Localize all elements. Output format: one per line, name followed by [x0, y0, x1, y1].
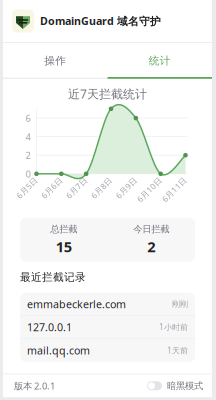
- staticText: 2: [25, 149, 30, 161]
- staticText: 1小时前: [159, 322, 188, 332]
- button[interactable]: 127.0.0.1: [20, 316, 195, 339]
- staticText: 6月9日: [115, 187, 141, 198]
- staticText: 6月8日: [90, 187, 116, 198]
- staticText: 最近拦截记录: [20, 271, 86, 284]
- staticText: 版本 2.0.1: [14, 380, 55, 392]
- staticText: 总拦截: [50, 223, 77, 235]
- staticText: 6: [25, 112, 30, 124]
- staticText: mail.qq.com: [27, 343, 90, 357]
- staticText: 操作: [44, 54, 66, 67]
- staticText: 刚刚: [172, 299, 188, 309]
- staticText: 6月6日: [41, 187, 67, 198]
- staticText: 6月5日: [16, 187, 42, 198]
- staticText: 15: [56, 237, 72, 256]
- button[interactable]: 统计: [107, 43, 212, 79]
- staticText: 暗黑模式: [167, 380, 203, 392]
- staticText: 1天前: [167, 345, 188, 356]
- staticText: DomainGuard 域名守护: [40, 14, 161, 28]
- staticText: 127.0.0.1: [27, 320, 72, 334]
- button[interactable]: 暗黑模式: [147, 380, 203, 392]
- staticText: emmabeckerle.com: [27, 297, 126, 311]
- staticText: 统计: [149, 54, 171, 67]
- staticText: 6月11日: [160, 187, 191, 198]
- staticText: 2: [147, 237, 155, 256]
- staticText: 近7天拦截统计: [68, 86, 147, 102]
- button[interactable]: mail.qq.com: [20, 339, 195, 362]
- staticText: 0: [25, 168, 30, 180]
- button[interactable]: emmabeckerle.com: [20, 293, 195, 316]
- button[interactable]: 操作: [3, 43, 107, 79]
- staticText: 4: [25, 130, 30, 143]
- staticText: 今日拦截: [133, 223, 169, 235]
- staticText: 6月10日: [135, 187, 166, 198]
- staticText: 6月7日: [66, 187, 92, 198]
